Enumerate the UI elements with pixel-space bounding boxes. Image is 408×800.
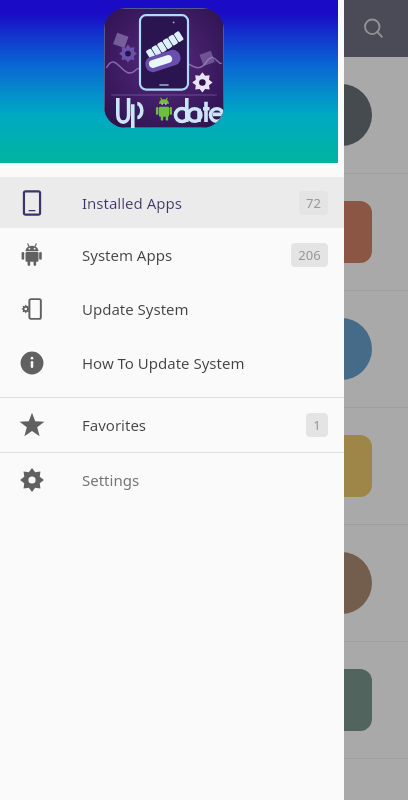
button[interactable]: Favorites: [0, 398, 344, 452]
staticText: System Apps: [82, 245, 173, 265]
staticText: Installed Apps: [82, 193, 182, 213]
staticText: 72: [306, 194, 321, 212]
staticText: Update System: [82, 299, 189, 319]
button[interactable]: Settings: [0, 453, 344, 507]
button[interactable]: How To Update System: [0, 336, 344, 390]
staticText: 1: [313, 416, 321, 434]
button[interactable]: App logo: [104, 8, 224, 128]
staticText: Settings: [82, 470, 140, 490]
button[interactable]: Update System: [0, 282, 344, 336]
button[interactable]: Installed Apps: [0, 177, 344, 228]
staticText: Favorites: [82, 415, 147, 435]
staticText: How To Update System: [82, 353, 245, 373]
staticText: 206: [298, 246, 321, 264]
button[interactable]: Search: [352, 7, 396, 51]
button[interactable]: System Apps: [0, 228, 344, 282]
